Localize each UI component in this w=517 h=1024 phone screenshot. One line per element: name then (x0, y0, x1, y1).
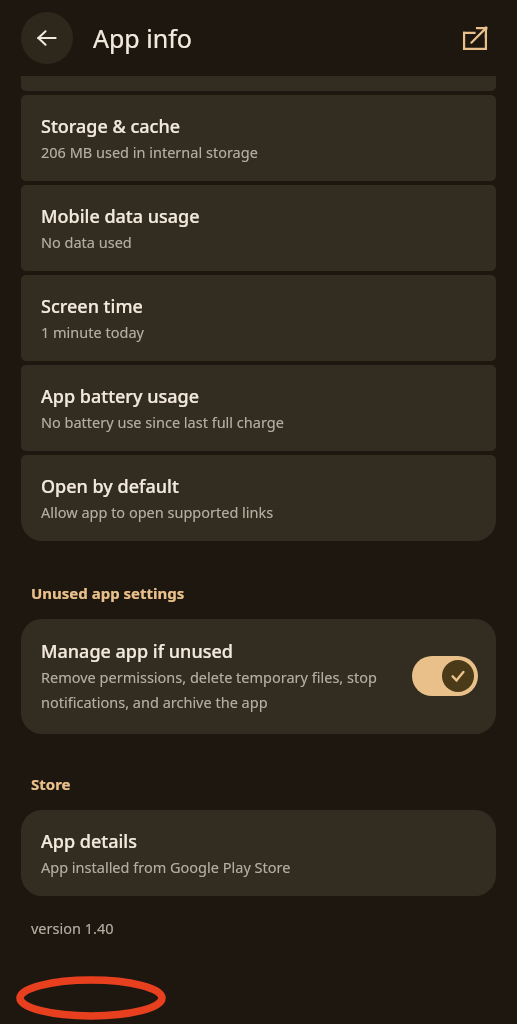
staticText: Mobile data usage (41, 204, 200, 229)
staticText: version 1.40 (31, 918, 114, 938)
button[interactable]: Storage & cache (21, 95, 496, 181)
staticText: No data used (41, 232, 132, 252)
button[interactable]: App battery usage (21, 365, 496, 451)
staticText: App details (41, 829, 137, 854)
staticText: Manage app if unused (41, 639, 233, 664)
staticText: Screen time (41, 294, 143, 319)
button[interactable]: Open in new (453, 16, 497, 60)
staticText: Store (31, 774, 71, 794)
button[interactable]: Open by default (21, 455, 496, 541)
button[interactable]: Mobile data usage (21, 185, 496, 271)
staticText: Unused app settings (31, 583, 185, 603)
staticText: 1 minute today (41, 322, 144, 342)
staticText: Open by default (41, 474, 179, 499)
staticText: No battery use since last full charge (41, 412, 284, 432)
staticText: App battery usage (41, 384, 199, 409)
button[interactable]: Screen time (21, 275, 496, 361)
button[interactable]: Manage app if unused (21, 619, 496, 734)
staticText: Storage & cache (41, 114, 181, 139)
button[interactable]: App details (21, 810, 496, 896)
staticText: App installed from Google Play Store (41, 857, 291, 877)
staticText: App info (93, 21, 453, 55)
staticText: Allow app to open supported links (41, 502, 274, 522)
button[interactable]: Back (21, 12, 73, 64)
button[interactable]: Manage app if unused toggle (412, 656, 478, 696)
staticText: Remove permissions, delete temporary fil… (41, 667, 398, 712)
staticText: 206 MB used in internal storage (41, 142, 258, 162)
